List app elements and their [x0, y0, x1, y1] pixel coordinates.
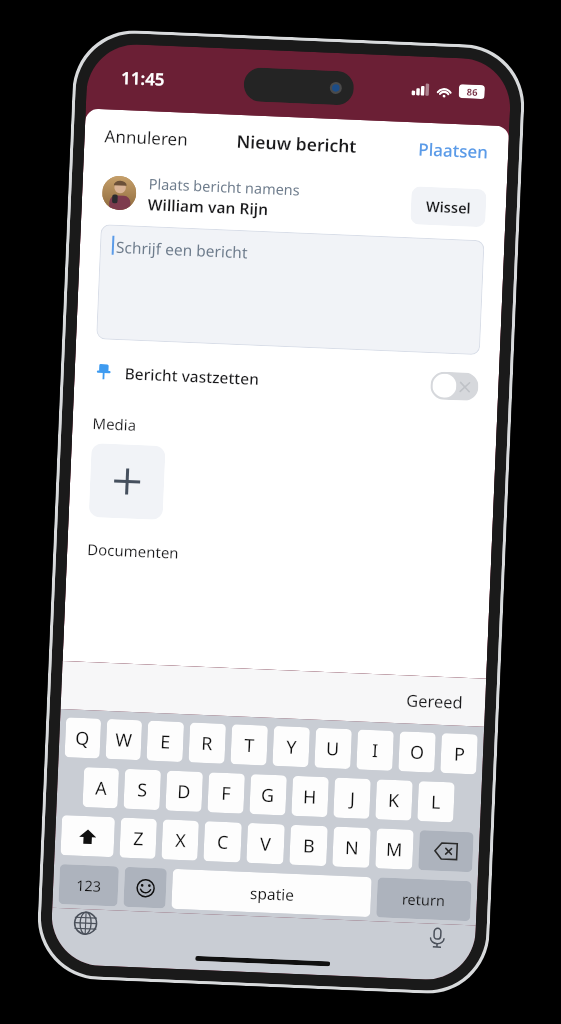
staticText: Y [286, 734, 298, 760]
button[interactable]: D [165, 770, 203, 812]
button[interactable]: H [291, 776, 329, 817]
staticText: Gereed [406, 688, 464, 713]
staticText: Bericht vastzetten [124, 362, 431, 396]
staticText: S [137, 777, 148, 803]
button[interactable]: F [207, 772, 245, 814]
button[interactable]: V [246, 823, 285, 864]
button[interactable]: C [203, 821, 242, 863]
staticText: 123 [76, 875, 102, 896]
button[interactable]: J [333, 777, 371, 819]
button[interactable]: X [161, 819, 199, 861]
button[interactable]: return [376, 877, 472, 921]
staticText: Nieuw bericht [236, 129, 358, 158]
button[interactable]: Bericht vastzetten aan/uit [430, 371, 479, 401]
button[interactable]: R [188, 722, 226, 764]
button[interactable]: Y [272, 726, 310, 767]
button[interactable]: W [105, 719, 142, 760]
button[interactable]: Z [119, 818, 157, 859]
staticText: Wissel [425, 196, 471, 218]
button[interactable]: Plaatsen [397, 129, 509, 172]
staticText: spatie [250, 882, 294, 905]
staticText: J [349, 786, 355, 811]
staticText: Schrijf een bericht [115, 236, 248, 262]
staticText: O [409, 740, 425, 765]
staticText: W [115, 727, 133, 753]
button[interactable]: Media toevoegen [89, 443, 166, 520]
staticText: 11:45 [121, 66, 165, 91]
button[interactable]: K [375, 779, 413, 821]
button[interactable]: I [356, 729, 394, 771]
staticText: V [260, 831, 272, 857]
button[interactable]: E [146, 721, 184, 762]
staticText: Plaats bericht namens [148, 173, 301, 199]
button[interactable]: Wissel [410, 186, 487, 227]
staticText: William van Rijn [147, 193, 269, 219]
staticText: X [175, 828, 187, 853]
staticText: Plaatsen [418, 137, 489, 163]
staticText: U [326, 736, 341, 762]
button[interactable]: B [289, 825, 328, 866]
staticText: F [221, 781, 232, 806]
staticText: L [430, 789, 441, 815]
button[interactable]: A [82, 767, 119, 808]
staticText: Documenten [87, 539, 180, 563]
button[interactable]: P [440, 733, 478, 774]
button[interactable]: N [332, 826, 371, 868]
staticText: A [95, 775, 108, 801]
button[interactable]: spatie [171, 869, 372, 917]
staticText: P [453, 741, 465, 767]
button[interactable]: Gereed [383, 679, 486, 722]
staticText: N [344, 835, 359, 861]
staticText: G [261, 782, 276, 808]
button[interactable]: Backspace [418, 830, 474, 872]
button[interactable]: Q [64, 717, 101, 759]
button[interactable]: Shift [60, 815, 115, 857]
staticText: B [302, 833, 315, 859]
staticText: return [401, 888, 446, 910]
button[interactable]: Toetsenbordtaal [73, 911, 98, 936]
button[interactable]: Schrijf een bericht [96, 224, 485, 355]
staticText: Media [92, 413, 137, 435]
staticText: 86 [466, 85, 478, 99]
staticText: C [217, 830, 230, 855]
staticText: K [387, 788, 400, 813]
button[interactable]: U [314, 728, 352, 769]
button[interactable]: M [375, 828, 414, 870]
staticText: E [160, 729, 172, 755]
staticText: R [201, 731, 214, 756]
button[interactable]: Bericht vastzetten [74, 352, 499, 406]
button[interactable]: S [123, 769, 161, 810]
staticText: H [303, 784, 318, 810]
button[interactable]: 123 [58, 864, 119, 906]
button[interactable]: Annuleren [84, 115, 209, 160]
staticText: Annuleren [104, 124, 189, 151]
button[interactable]: O [398, 731, 436, 773]
button[interactable]: Emoji [123, 867, 167, 908]
staticText: M [385, 837, 403, 862]
button[interactable]: L [417, 781, 455, 822]
button[interactable]: T [230, 724, 268, 766]
staticText: I [372, 738, 380, 763]
button[interactable]: Dicteren [425, 925, 450, 950]
staticText: D [177, 779, 192, 804]
staticText: Z [133, 826, 145, 851]
button[interactable]: G [249, 774, 287, 815]
staticText: T [244, 733, 256, 758]
staticText: Q [75, 726, 91, 751]
